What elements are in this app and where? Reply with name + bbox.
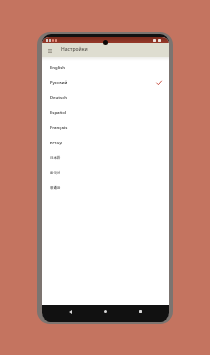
staticText: Настройки: [61, 46, 88, 53]
staticText: Français: [50, 125, 68, 131]
button[interactable]: English: [42, 60, 169, 75]
button[interactable]: 普通话: [42, 180, 169, 195]
button[interactable]: Русский: [42, 75, 169, 90]
button[interactable]: Open navigation menu: [45, 46, 54, 55]
button[interactable]: Español: [42, 105, 169, 120]
button[interactable]: Back: [65, 306, 76, 317]
staticText: עברית: [50, 140, 62, 145]
button[interactable]: Deutsch: [42, 90, 169, 105]
staticText: Русский: [50, 80, 68, 86]
staticText: Deutsch: [50, 95, 68, 101]
button[interactable]: Français: [42, 120, 169, 135]
button[interactable]: 한국어: [42, 165, 169, 180]
staticText: 普通话: [50, 186, 61, 190]
staticText: Español: [50, 110, 67, 116]
staticText: English: [50, 65, 66, 71]
button[interactable]: Recent apps: [135, 306, 146, 317]
button[interactable]: 日本語: [42, 150, 169, 165]
staticText: 한국어: [50, 171, 61, 175]
button[interactable]: עברית: [42, 135, 169, 150]
button[interactable]: Home: [100, 306, 111, 317]
staticText: 日本語: [50, 156, 61, 160]
